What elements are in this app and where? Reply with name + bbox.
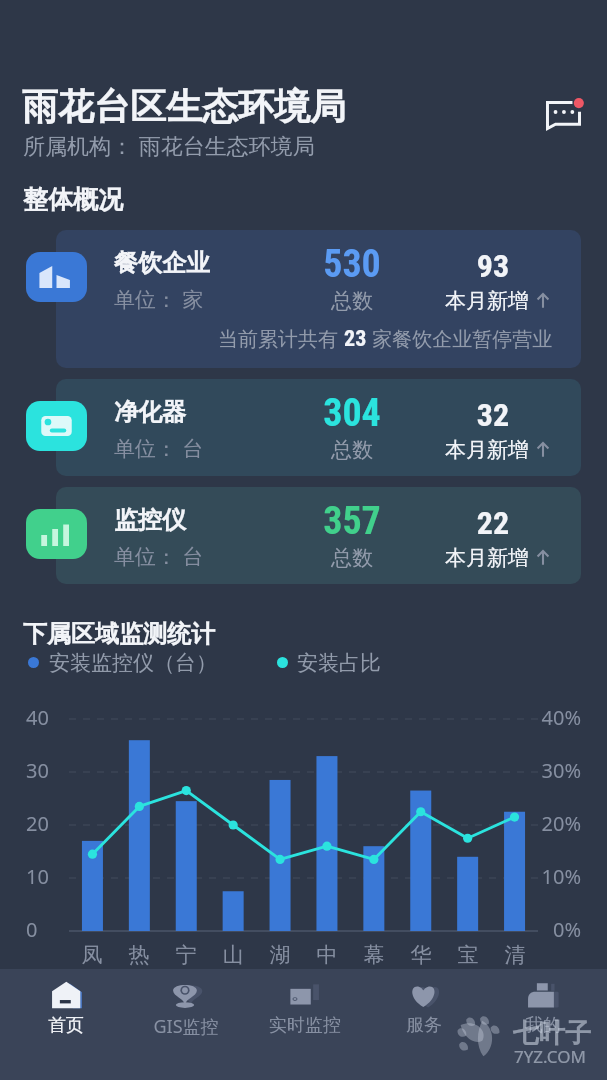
staticText: 本月新增 [445,545,529,571]
staticText: 40 [26,704,49,731]
staticText: 宁 [170,942,202,968]
staticText: 整体概况 [23,184,123,215]
staticText: 安装监控仪（台） [49,650,217,676]
staticText: 30 [26,757,49,784]
staticText: 32 [433,396,553,434]
staticText: 本月新增 [445,288,529,314]
staticText: GIS监控 [128,1014,244,1039]
staticText: 净化器 [114,397,186,427]
staticText: 餐饮企业 [114,248,210,278]
staticText: 山 [217,942,249,968]
button[interactable]: 实时监控 [247,969,363,1039]
button[interactable]: 净化器 [56,379,581,476]
staticText: 22 [433,504,553,542]
staticText: 实时监控 [247,1014,363,1037]
staticText: 10 [26,863,49,890]
staticText: 热 [123,942,155,968]
staticText: 单位： 台 [114,542,204,571]
staticText: 0% [490,916,581,943]
button[interactable]: 服务 [366,969,482,1039]
staticText: 0 [26,916,38,943]
staticText: 23 [344,326,367,352]
staticText: 家餐饮企业暂停营业 [367,325,553,352]
staticText: 30% [490,757,581,784]
staticText: 总数 [292,545,412,571]
staticText: 93 [433,247,553,285]
staticText: 中 [311,942,343,968]
staticText: 幕 [358,942,390,968]
button[interactable]: 监控仪 [56,487,581,584]
staticText: 总数 [292,437,412,463]
staticText: 304 [292,391,412,436]
staticText: 安装占比 [297,650,381,676]
button[interactable]: 我的 [485,969,601,1039]
staticText: 雨花台区生态环境局 [22,84,346,129]
staticText: 357 [292,499,412,544]
staticText: 单位： 台 [114,434,204,463]
staticText: 宝 [452,942,484,968]
staticText: 20% [490,810,581,837]
button[interactable]: Messages [546,101,581,130]
staticText: 10% [490,863,581,890]
staticText: 530 [292,242,412,287]
staticText: 总数 [292,288,412,314]
staticText: 凤 [76,942,108,968]
staticText: 清 [499,942,531,968]
staticText: 华 [405,942,437,968]
staticText: 40% [490,704,581,731]
staticText: 所属机构： 雨花台生态环境局 [23,130,315,160]
staticText: 20 [26,810,49,837]
staticText: 单位： 家 [114,285,204,314]
staticText: 服务 [366,1014,482,1037]
button[interactable]: 餐饮企业 [56,230,581,368]
staticText: 湖 [264,942,296,968]
staticText: 七叶子 [513,1017,591,1050]
staticText: 本月新增 [445,437,529,463]
staticText: 首页 [8,1014,124,1037]
staticText: 监控仪 [114,505,186,535]
staticText: 下属区域监测统计 [23,619,215,649]
button[interactable]: 首页 [8,969,124,1039]
staticText: 我的 [485,1014,601,1037]
button[interactable]: GIS监控 [128,969,244,1039]
staticText: 7YZ.COM [514,1045,586,1068]
staticText: 当前累计共有 [218,325,344,352]
